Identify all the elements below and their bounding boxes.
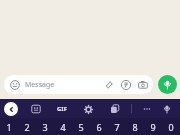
button[interactable]: Payment [120,79,131,90]
button[interactable]: Emoji [4,75,153,94]
staticText: 8 [132,121,138,133]
button[interactable]: 5 [72,118,90,135]
staticText: Message [25,80,55,90]
staticText: 6 [96,121,102,133]
button[interactable]: Voice input [160,102,174,116]
staticText: 0 [168,121,174,133]
button[interactable]: Attach [103,79,114,90]
button[interactable]: 4 [54,118,72,135]
button[interactable]: 8 [126,118,144,135]
button[interactable]: Back [4,102,18,116]
staticText: 5 [78,121,84,133]
button[interactable]: 1 [0,118,18,135]
staticText: 1 [6,121,12,133]
button[interactable]: 9 [144,118,162,135]
button[interactable]: 6 [90,118,108,135]
button[interactable]: Voice message [158,75,177,94]
button[interactable]: Stickers [30,103,42,115]
staticText: GIF [57,105,67,113]
button[interactable]: GIF [57,105,67,113]
button[interactable]: Camera [137,79,148,90]
button[interactable]: More options [141,103,153,115]
button[interactable]: 0 [162,118,180,135]
button[interactable]: 2 [18,118,36,135]
staticText: 2 [24,121,30,133]
button[interactable]: Clipboard [109,103,121,115]
button[interactable]: 3 [36,118,54,135]
button[interactable]: 7 [108,118,126,135]
staticText: 7 [114,121,120,133]
staticText: 9 [150,121,156,133]
button[interactable]: Settings [82,103,94,115]
button[interactable]: Emoji [9,79,20,90]
staticText: 4 [60,121,66,133]
staticText: 3 [42,121,48,133]
